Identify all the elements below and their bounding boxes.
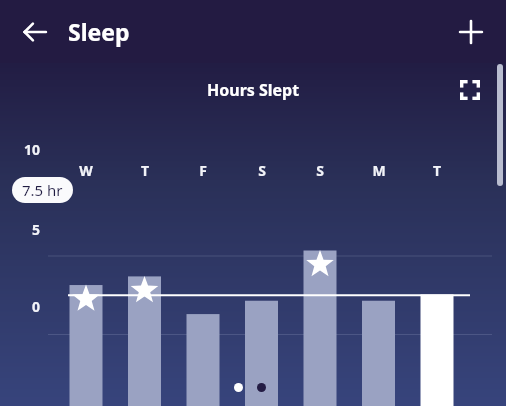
staticText: 5 xyxy=(8,220,40,239)
button[interactable]: Fullscreen xyxy=(454,74,486,106)
button[interactable]: 7.5 hr xyxy=(12,177,73,203)
staticText: W xyxy=(74,161,98,180)
button[interactable]: Page 1 xyxy=(234,383,243,392)
button[interactable]: Page 2 xyxy=(257,383,266,392)
staticText: M xyxy=(367,161,391,180)
staticText: Sleep xyxy=(68,16,130,47)
staticText: 7.5 hr xyxy=(22,180,63,200)
button[interactable]: Back xyxy=(18,15,52,49)
staticText: S xyxy=(250,161,274,180)
staticText: T xyxy=(133,161,157,180)
staticText: T xyxy=(425,161,449,180)
staticText: F xyxy=(191,161,215,180)
staticText: Hours Slept xyxy=(207,79,300,101)
staticText: 10 xyxy=(8,140,40,159)
staticText: 0 xyxy=(8,297,40,316)
staticText: S xyxy=(308,161,332,180)
button[interactable]: Add xyxy=(454,15,488,49)
